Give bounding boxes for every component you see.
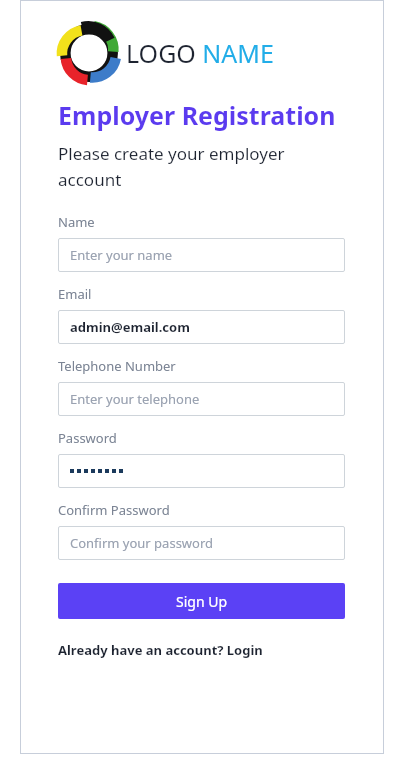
staticText: Email [58, 285, 92, 303]
button[interactable]: Already have an account? Login [58, 641, 263, 659]
staticText: Confirm Password [58, 501, 170, 519]
staticText: Sign Up [176, 592, 228, 611]
button[interactable] [58, 454, 345, 488]
staticText: Already have an account? Login [58, 641, 263, 659]
staticText: Name [58, 213, 95, 231]
button[interactable]: admin@email.com [58, 310, 345, 344]
button[interactable]: Enter your telephone [58, 382, 345, 416]
other: Logo [58, 22, 120, 84]
staticText: Enter your telephone [70, 390, 200, 408]
staticText: Employer Registration [58, 98, 336, 132]
staticText: Enter your name [70, 246, 173, 264]
staticText: Please create your employer account [58, 142, 345, 191]
button[interactable]: Enter your name [58, 238, 345, 272]
staticText: Password [58, 429, 117, 447]
staticText: Confirm your password [70, 534, 214, 552]
staticText: Telephone Number [58, 357, 176, 375]
staticText: admin@email.com [70, 318, 190, 336]
button[interactable]: Confirm your password [58, 526, 345, 560]
button[interactable]: Sign Up [58, 583, 345, 619]
staticText: LOGO NAME [126, 36, 274, 70]
